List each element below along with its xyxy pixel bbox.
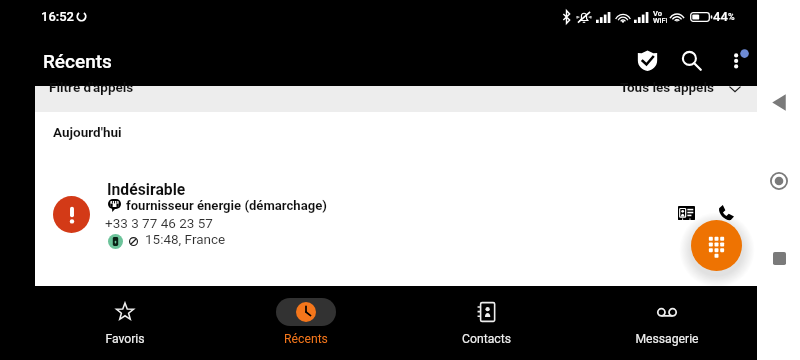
button[interactable]: Rechercher [670, 39, 712, 81]
staticText: % [728, 12, 735, 23]
button[interactable]: Accueil [765, 167, 793, 195]
button[interactable]: Détails du contact [668, 195, 704, 231]
button[interactable]: Protection contre le spam [626, 39, 668, 81]
button[interactable] [35, 86, 757, 112]
button[interactable]: Contacts [396, 292, 576, 354]
staticText: 15:48, France [145, 231, 226, 247]
staticText: Messagerie [635, 332, 699, 346]
button[interactable]: Favoris [35, 292, 215, 354]
staticText: 44 [713, 9, 728, 24]
staticText: fournisseur énergie (démarchage) [126, 198, 327, 213]
button[interactable]: Messagerie [577, 292, 757, 354]
button[interactable]: Récents [216, 292, 396, 354]
staticText: Filtre d'appels [49, 79, 134, 95]
button[interactable]: Appeler [708, 195, 744, 231]
staticText: Contacts [462, 332, 511, 346]
staticText: WiFi [653, 16, 667, 25]
button[interactable]: Clavier numérique [691, 220, 742, 271]
staticText: Favoris [105, 332, 145, 346]
button[interactable] [35, 162, 757, 260]
button[interactable]: Applications récentes [765, 244, 793, 272]
staticText: Indésirable [107, 180, 186, 198]
staticText: Aujourd'hui [53, 124, 122, 140]
staticText: Récents [43, 50, 112, 72]
button[interactable]: Retour [765, 88, 793, 116]
staticText: +33 3 77 46 23 57 [105, 215, 213, 231]
staticText: 16:52 [41, 9, 75, 24]
button[interactable]: Plus d'options [718, 39, 760, 81]
staticText: Vo [653, 9, 662, 18]
staticText: Récents [284, 332, 328, 346]
staticText: Tous les appels [620, 79, 714, 95]
